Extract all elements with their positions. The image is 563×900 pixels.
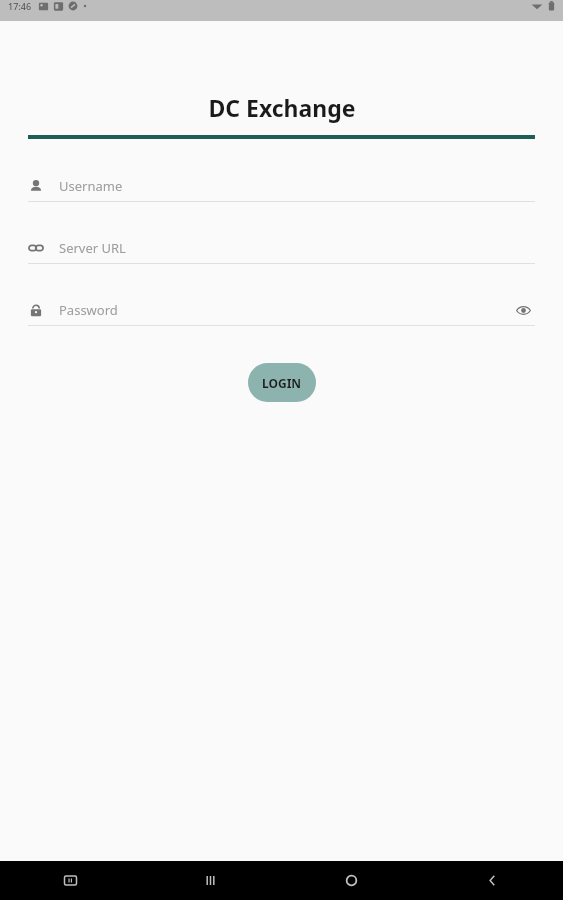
button[interactable]: Toggle password visibility xyxy=(511,298,535,322)
staticText: 17:46 xyxy=(8,0,32,12)
staticText: Server URL xyxy=(59,239,126,257)
button[interactable]: Recent apps xyxy=(140,861,281,900)
staticText: LOGIN xyxy=(262,375,302,391)
button[interactable]: Home xyxy=(281,861,422,900)
staticText: Password xyxy=(59,301,118,319)
button[interactable]: Server URL xyxy=(28,233,535,264)
button[interactable]: Password xyxy=(28,295,535,326)
button[interactable]: Hide keyboard xyxy=(0,861,140,900)
staticText: Username xyxy=(59,177,123,195)
staticText: DC Exchange xyxy=(208,92,356,123)
button[interactable]: LOGIN xyxy=(248,363,316,402)
button[interactable]: Back xyxy=(422,861,563,900)
button[interactable]: Username xyxy=(28,171,535,202)
